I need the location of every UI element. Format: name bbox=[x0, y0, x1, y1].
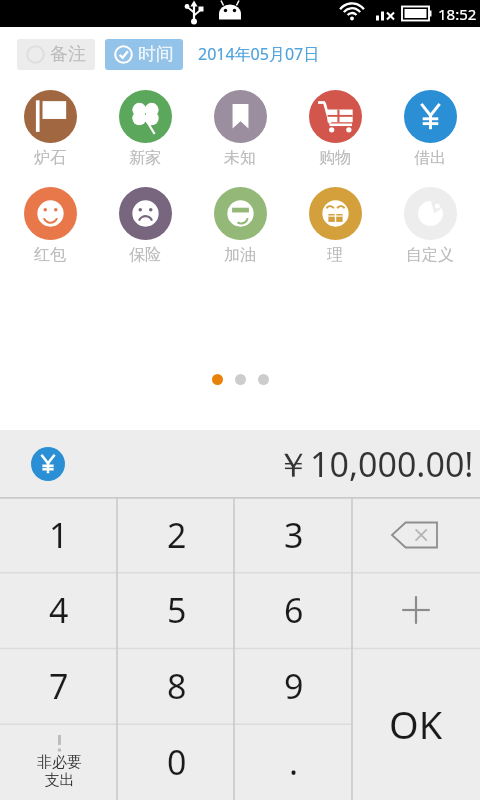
button[interactable]: Backspace bbox=[352, 497, 480, 572]
staticText: 5 bbox=[167, 587, 187, 633]
button[interactable]: 4 bbox=[0, 572, 118, 648]
button[interactable]: 借出 bbox=[385, 87, 475, 171]
button[interactable]: . bbox=[235, 724, 352, 800]
button[interactable]: OK bbox=[352, 648, 480, 800]
staticText: 红包 bbox=[34, 245, 66, 265]
button[interactable]: 9 bbox=[235, 648, 352, 724]
button[interactable]: 非必要 支出 bbox=[0, 724, 118, 800]
button[interactable]: 未知 bbox=[195, 87, 285, 171]
button[interactable]: 理 bbox=[290, 184, 380, 268]
staticText: ￥10,000.00! bbox=[276, 441, 474, 487]
staticText: 理 bbox=[327, 245, 343, 265]
button[interactable]: 炉石 bbox=[5, 87, 95, 171]
staticText: 非必要 支出 bbox=[37, 753, 82, 790]
staticText: 借出 bbox=[414, 148, 446, 168]
button[interactable]: 6 bbox=[235, 572, 352, 648]
button[interactable]: 2014年05月07日 bbox=[198, 43, 320, 65]
staticText: 炉石 bbox=[34, 148, 66, 168]
staticText: 3 bbox=[284, 512, 304, 558]
button[interactable]: 5 bbox=[118, 572, 235, 648]
button[interactable]: 7 bbox=[0, 648, 118, 724]
staticText: 7 bbox=[49, 663, 69, 709]
button[interactable]: 新家 bbox=[100, 87, 190, 171]
staticText: 8 bbox=[167, 663, 187, 709]
button[interactable]: 自定义 bbox=[385, 184, 475, 268]
button[interactable]: 时间 bbox=[105, 39, 183, 70]
button[interactable]: Currency type bbox=[31, 447, 65, 481]
button[interactable]: 3 bbox=[235, 497, 352, 572]
staticText: 加油 bbox=[224, 245, 256, 265]
staticText: OK bbox=[389, 698, 443, 750]
staticText: 时间 bbox=[138, 43, 174, 66]
button[interactable]: 0 bbox=[118, 724, 235, 800]
staticText: . bbox=[289, 739, 299, 785]
staticText: 自定义 bbox=[406, 245, 454, 265]
staticText: 6 bbox=[284, 587, 304, 633]
button[interactable]: 保险 bbox=[100, 184, 190, 268]
staticText: 2 bbox=[167, 512, 187, 558]
staticText: 1 bbox=[49, 512, 69, 558]
staticText: 未知 bbox=[224, 148, 256, 168]
button[interactable]: 备注 bbox=[17, 39, 95, 70]
staticText: 4 bbox=[49, 587, 69, 633]
staticText: 购物 bbox=[319, 148, 351, 168]
staticText: 9 bbox=[284, 663, 304, 709]
button[interactable]: 1 bbox=[0, 497, 118, 572]
button[interactable]: Plus bbox=[352, 572, 480, 648]
staticText: 18:52 bbox=[438, 4, 477, 24]
button[interactable]: 加油 bbox=[195, 184, 285, 268]
staticText: 0 bbox=[167, 739, 187, 785]
staticText: 保险 bbox=[129, 245, 161, 265]
button[interactable]: 2 bbox=[118, 497, 235, 572]
button[interactable]: 红包 bbox=[5, 184, 95, 268]
button[interactable]: 购物 bbox=[290, 87, 380, 171]
button[interactable]: 8 bbox=[118, 648, 235, 724]
staticText: 新家 bbox=[129, 148, 161, 168]
staticText: 备注 bbox=[50, 43, 86, 66]
